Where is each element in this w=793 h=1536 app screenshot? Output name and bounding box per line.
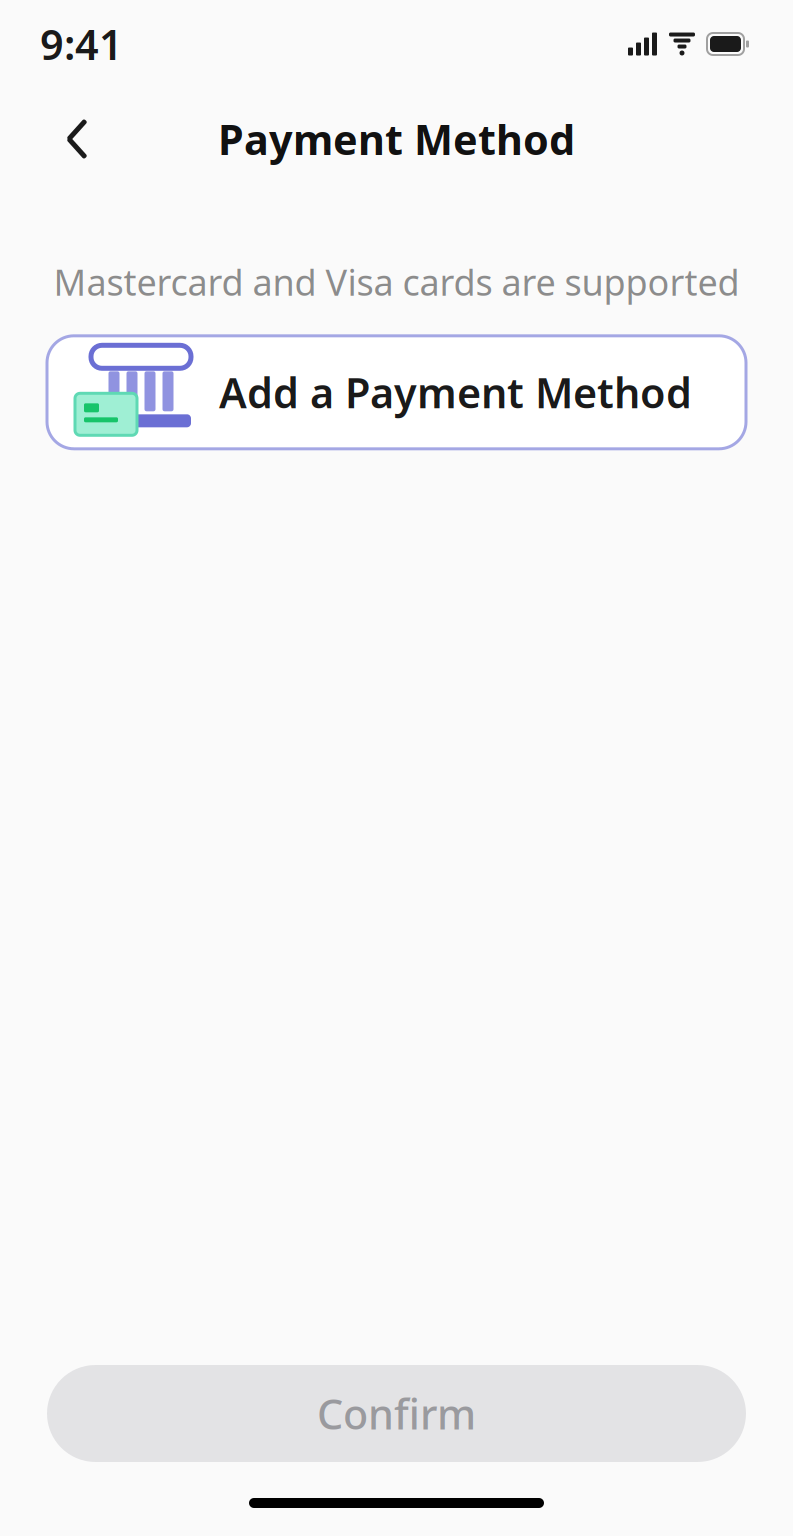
staticText: 9:41 bbox=[40, 17, 123, 71]
staticText: Mastercard and Visa cards are supported bbox=[53, 258, 739, 306]
button[interactable]: Add a Payment Method bbox=[47, 336, 746, 449]
button[interactable]: Confirm bbox=[47, 1365, 746, 1462]
staticText: Confirm bbox=[317, 1386, 476, 1441]
staticText: Payment Method bbox=[218, 112, 575, 166]
button[interactable]: Back bbox=[46, 108, 108, 170]
staticText: Add a Payment Method bbox=[219, 365, 692, 420]
